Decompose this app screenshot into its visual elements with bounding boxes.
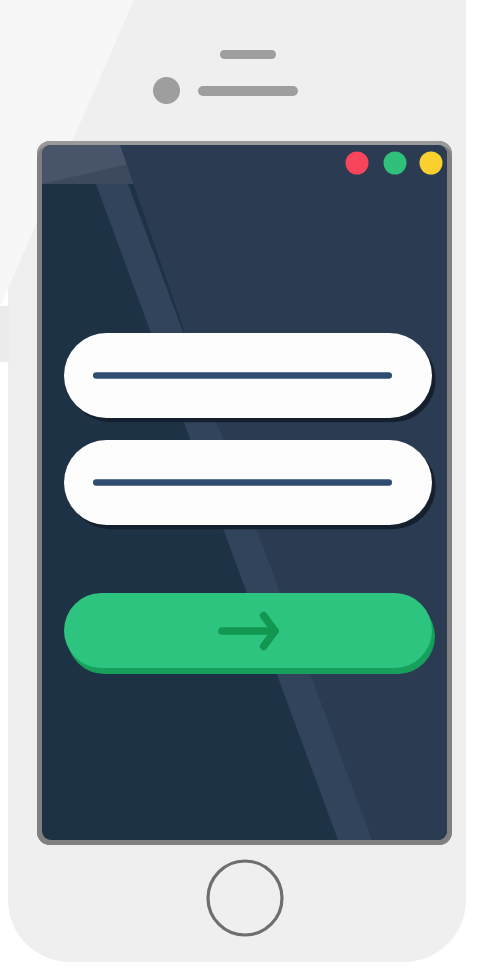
button[interactable]: Mobile login screen illustration [0,0,483,980]
